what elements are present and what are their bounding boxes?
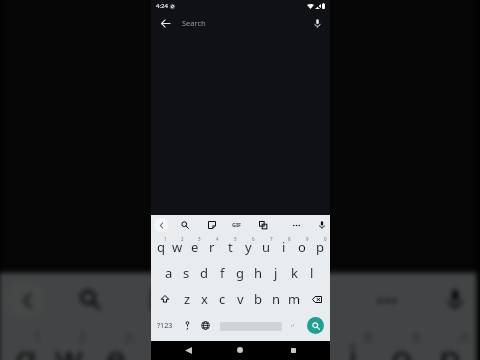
button[interactable]: More options [365, 278, 407, 321]
button[interactable]: Backspace [303, 286, 330, 312]
staticText: c [219, 290, 226, 308]
button[interactable]: u [282, 323, 330, 360]
button[interactable]: Search [69, 278, 111, 321]
button[interactable]: Emoji [179, 317, 195, 333]
button[interactable]: Stickers [141, 278, 183, 321]
staticText: n [272, 290, 281, 308]
button[interactable]: s [177, 260, 195, 286]
button[interactable]: t [221, 234, 239, 260]
button[interactable]: f [213, 260, 231, 286]
button[interactable]: GIF [227, 215, 247, 234]
button[interactable]: Home [231, 341, 249, 359]
button[interactable]: w [169, 234, 186, 260]
staticText: g [236, 264, 244, 282]
button[interactable]: v [231, 286, 249, 312]
staticText: k [291, 264, 298, 282]
staticText: u [262, 238, 271, 256]
button[interactable]: g [231, 260, 249, 286]
button[interactable]: i [330, 323, 378, 360]
button[interactable]: Voice input [434, 278, 477, 321]
button[interactable]: l [303, 260, 321, 286]
staticText: z [184, 290, 191, 308]
button[interactable]: Shift [151, 286, 179, 312]
button[interactable]: r [138, 323, 186, 360]
staticText: p [316, 238, 324, 256]
button[interactable]: b [249, 286, 267, 312]
staticText: f [220, 264, 225, 282]
staticText: GIF [232, 221, 242, 228]
button[interactable]: Period [284, 312, 300, 338]
staticText: 6 [252, 236, 255, 242]
button[interactable]: GIF [202, 273, 255, 323]
button[interactable]: Search [307, 317, 324, 334]
button[interactable]: Translate [255, 217, 271, 233]
button[interactable]: y [239, 234, 257, 260]
button[interactable]: t [186, 323, 234, 360]
staticText: t [205, 334, 218, 360]
button[interactable]: h [249, 260, 267, 286]
button[interactable]: Expand toolbar [154, 218, 168, 232]
button[interactable]: d [195, 260, 213, 286]
button[interactable]: q [152, 234, 169, 260]
staticText: 7 [317, 329, 325, 345]
staticText: a [165, 264, 173, 282]
staticText: r [209, 238, 215, 256]
staticText: y [245, 238, 252, 256]
button[interactable]: k [285, 260, 303, 286]
button[interactable]: Search [177, 217, 193, 233]
button[interactable]: Back [156, 14, 174, 32]
button[interactable]: p [311, 234, 329, 260]
button[interactable]: u [257, 234, 275, 260]
button[interactable]: a [160, 260, 177, 286]
button[interactable]: Symbols [154, 312, 176, 338]
staticText: 2 [181, 236, 184, 242]
button[interactable]: z [179, 286, 196, 312]
button[interactable]: o [378, 323, 426, 360]
button[interactable]: i [275, 234, 293, 260]
staticText: t [228, 238, 233, 256]
staticText: 5 [234, 236, 237, 242]
button[interactable]: Back [179, 341, 197, 359]
button[interactable]: e [186, 234, 203, 260]
button[interactable]: q [2, 323, 47, 360]
staticText: 4 [173, 329, 181, 345]
staticText: h [254, 264, 263, 282]
button[interactable]: Voice input [314, 217, 330, 233]
staticText: x [201, 290, 208, 308]
button[interactable]: r [203, 234, 221, 260]
button[interactable]: Stickers [204, 217, 220, 233]
button[interactable]: e [93, 323, 138, 360]
staticText: 0 [324, 236, 327, 242]
button[interactable]: x [196, 286, 213, 312]
staticText: GIF [215, 289, 242, 307]
button[interactable]: j [267, 260, 285, 286]
button[interactable]: More options [288, 217, 304, 233]
staticText: 3 [198, 236, 201, 242]
button[interactable]: Voice search [308, 14, 326, 32]
staticText: l [310, 264, 314, 282]
staticText: w [172, 238, 183, 256]
button[interactable]: y [234, 323, 282, 360]
staticText: b [254, 290, 262, 308]
button[interactable]: Expand toolbar [7, 281, 45, 318]
button[interactable]: n [267, 286, 285, 312]
staticText: y [250, 334, 269, 360]
button[interactable]: w [47, 323, 93, 360]
staticText: m [288, 290, 301, 308]
button[interactable]: c [213, 286, 231, 312]
button[interactable]: Translate [277, 278, 319, 321]
button[interactable]: m [285, 286, 303, 312]
button[interactable]: p [426, 323, 474, 360]
button[interactable]: Recent apps [284, 341, 302, 359]
staticText: q [157, 238, 165, 256]
staticText: w [55, 334, 85, 360]
button[interactable]: Change language [197, 317, 213, 333]
staticText: ?123 [157, 320, 173, 330]
staticText: 5 [221, 329, 229, 345]
staticText: e [106, 334, 127, 360]
button[interactable]: o [293, 234, 311, 260]
